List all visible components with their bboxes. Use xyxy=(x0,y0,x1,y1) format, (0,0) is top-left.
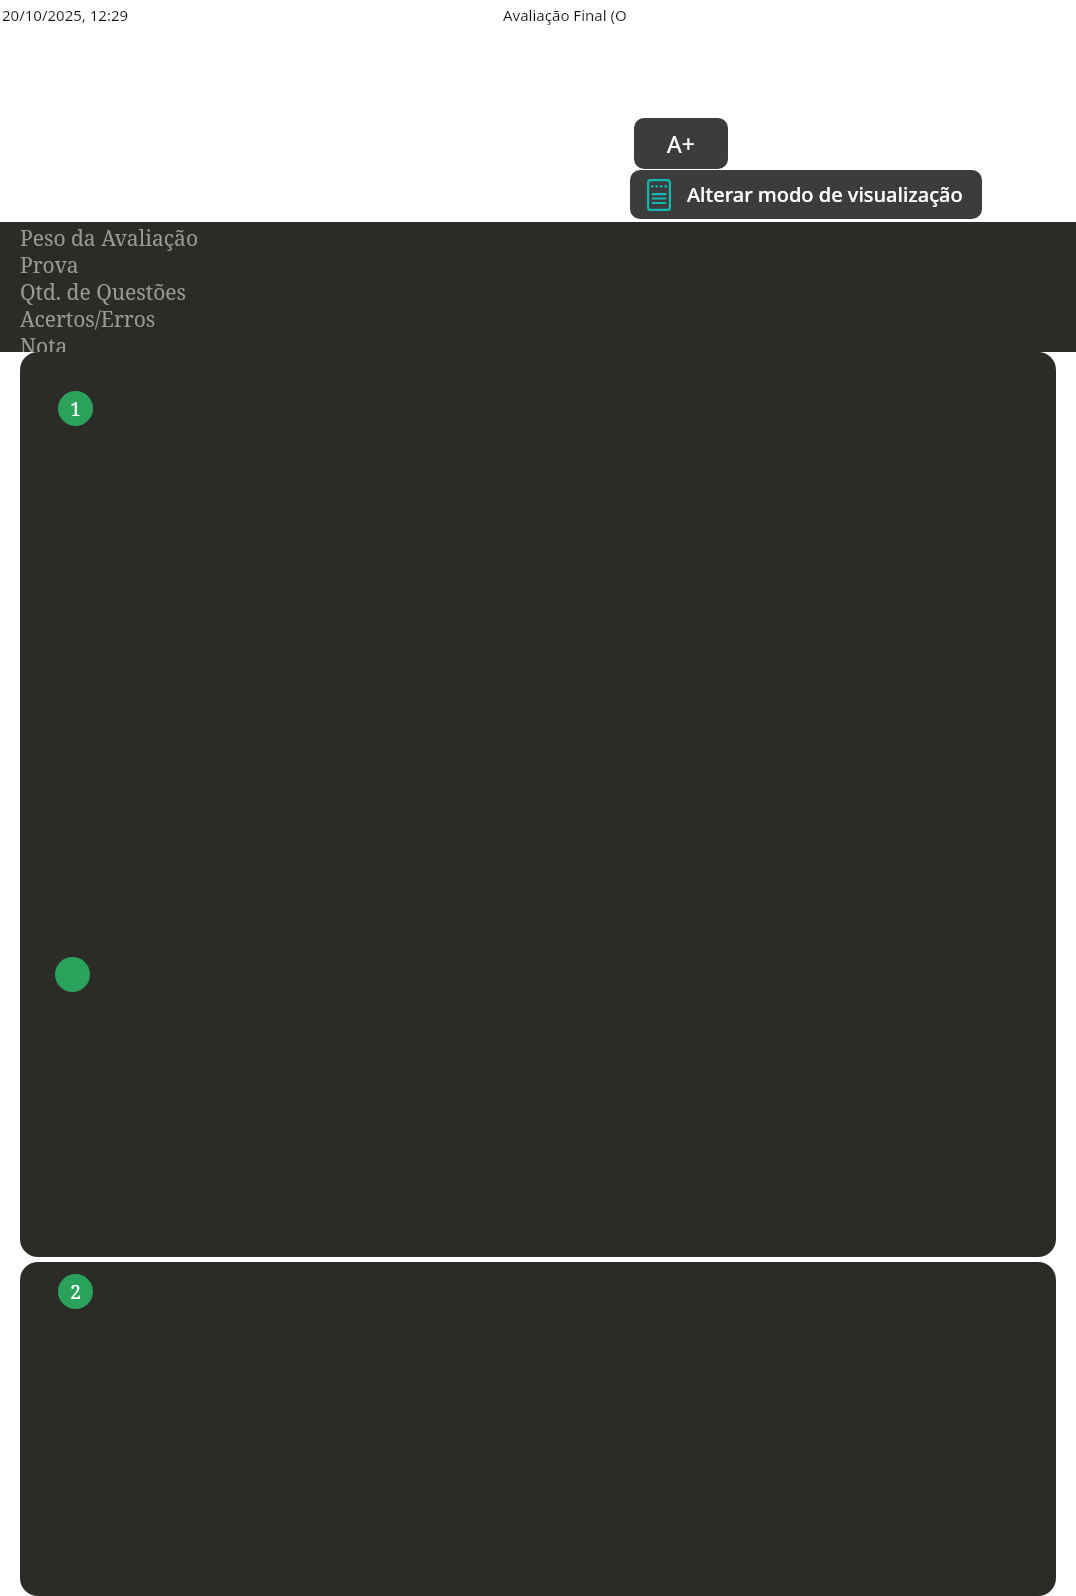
button[interactable]: Aumentar fonte xyxy=(634,118,728,169)
staticText: A+ xyxy=(667,128,695,159)
staticText: Acertos/Erros xyxy=(20,305,156,332)
staticText: 20/10/2025, 12:29 xyxy=(2,5,129,25)
button[interactable]: 2 xyxy=(20,1262,1056,1596)
staticText: Avaliação Final (O xyxy=(503,5,627,25)
staticText: Peso da Avaliação xyxy=(20,224,198,251)
staticText: Alterar modo de visualização xyxy=(687,181,963,208)
staticText: Prova xyxy=(20,251,79,278)
staticText: Nota xyxy=(20,332,68,352)
staticText: 1 xyxy=(70,396,81,422)
other: Alterar modo de visualização xyxy=(647,179,671,211)
staticText: Qtd. de Questões xyxy=(20,278,187,305)
staticText: 2 xyxy=(70,1279,81,1305)
button[interactable]: 1 xyxy=(20,352,1056,1257)
button[interactable]: Alterar modo de visualização xyxy=(630,170,982,219)
